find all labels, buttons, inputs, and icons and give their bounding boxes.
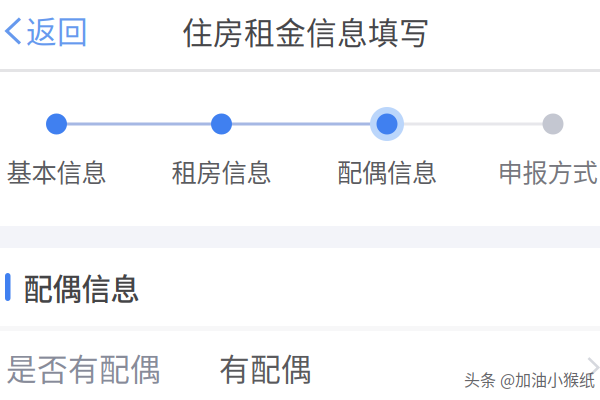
staticText: 配偶信息 (23, 266, 139, 308)
staticText: 返回 (26, 8, 88, 52)
button[interactable]: 租房信息 (171, 156, 271, 186)
staticText: 申报方式 (497, 153, 597, 189)
button[interactable]: 租房信息 (204, 107, 238, 141)
button[interactable]: 配偶信息 (370, 107, 404, 141)
staticText: 是否有配偶 (6, 345, 161, 390)
button[interactable]: 申报方式 (497, 156, 597, 186)
button[interactable]: 是否有配偶 (0, 325, 600, 396)
staticText: 租房信息 (171, 153, 271, 189)
staticText: 配偶信息 (337, 153, 437, 189)
staticText: 基本信息 (6, 153, 106, 189)
staticText: 住房租金信息填写 (182, 9, 430, 53)
button[interactable]: 配偶信息 (337, 156, 437, 186)
button[interactable]: 申报方式 (536, 107, 570, 141)
staticText: 有配偶 (219, 345, 312, 390)
staticText: 头条 @加油小猴纸 (464, 367, 595, 391)
button[interactable]: 基本信息 (6, 156, 106, 186)
button[interactable]: 返回 (0, 0, 110, 60)
button[interactable]: 基本信息 (39, 107, 73, 141)
